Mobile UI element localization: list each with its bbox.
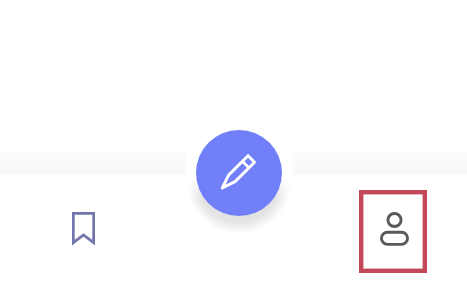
button[interactable]: Compose <box>196 130 282 216</box>
button[interactable]: Bookmarks <box>44 190 124 266</box>
button[interactable]: Profile <box>359 190 427 273</box>
